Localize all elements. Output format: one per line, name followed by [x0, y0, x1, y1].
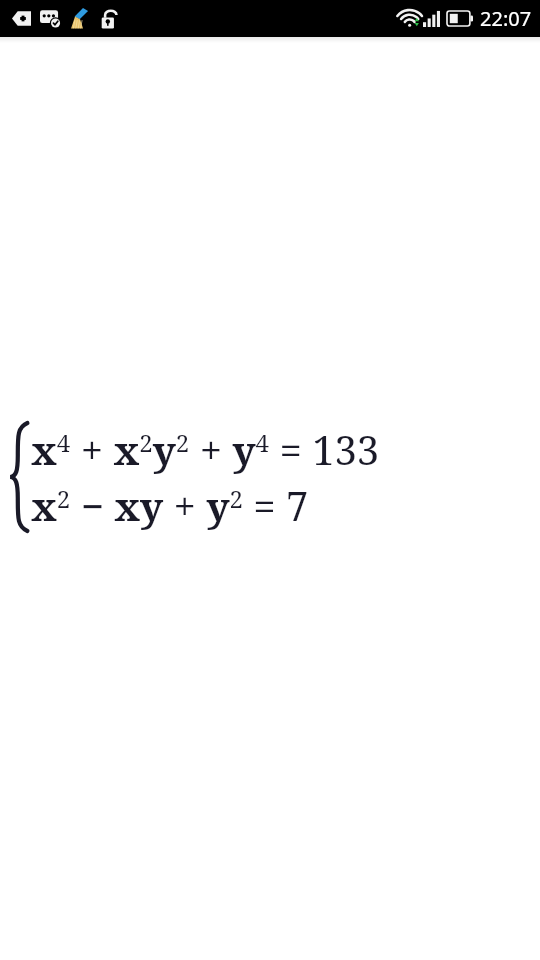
button[interactable]: x4 + x2y2 + y4 = 133 [9, 422, 380, 532]
staticText: x2 − xy + y2 = 7 [31, 478, 309, 532]
staticText: 22:07 [480, 5, 532, 32]
staticText: x4 + x2y2 + y4 = 133 [31, 422, 380, 476]
